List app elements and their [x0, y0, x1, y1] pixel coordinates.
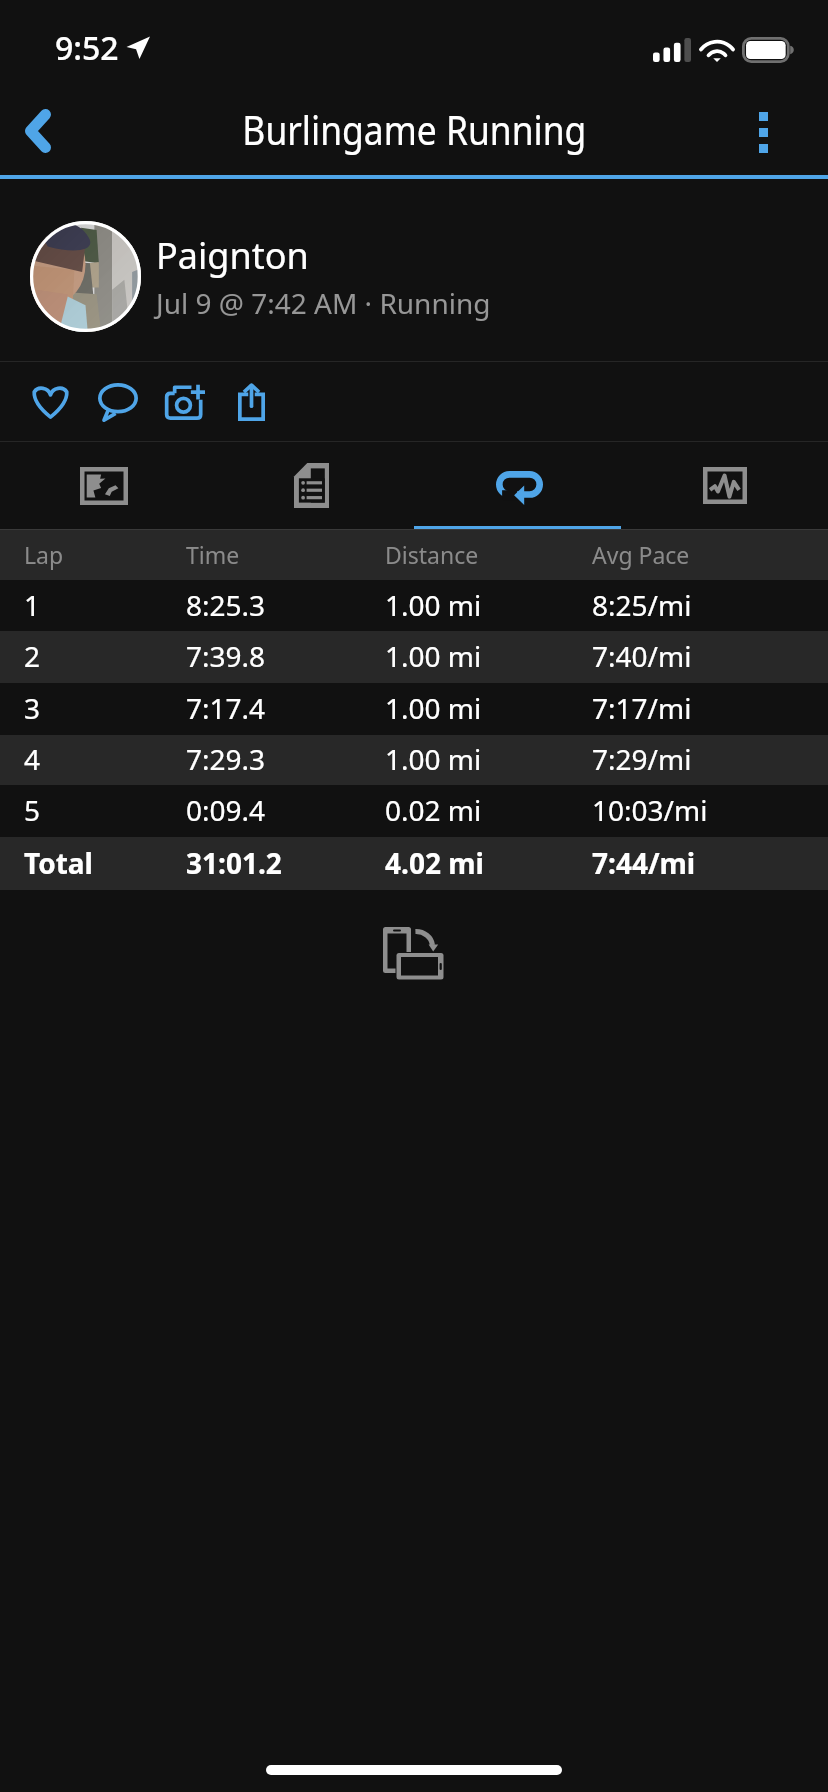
- staticText: Avg Pace: [592, 539, 690, 570]
- staticText: 7:17/mi: [592, 689, 692, 727]
- button[interactable]: 1: [0, 580, 828, 631]
- staticText: 31:01.2: [186, 844, 282, 882]
- button[interactable]: Comment: [84, 367, 151, 437]
- button[interactable]: More options: [731, 96, 795, 168]
- staticText: 0.02 mi: [385, 791, 482, 829]
- staticText: 7:40/mi: [592, 637, 692, 675]
- staticText: 8:25.3: [186, 586, 266, 624]
- button[interactable]: 3: [0, 683, 828, 735]
- staticText: 8:25/mi: [592, 586, 692, 624]
- button[interactable]: Like: [17, 367, 84, 437]
- staticText: 1.00 mi: [385, 637, 482, 675]
- button[interactable]: Paignton: [0, 179, 828, 361]
- staticText: Paignton: [156, 231, 309, 280]
- staticText: 7:29.3: [186, 740, 266, 778]
- button[interactable]: Add photo: [151, 367, 218, 437]
- staticText: Burlingame Running: [242, 102, 587, 156]
- button[interactable]: Lap: [0, 530, 828, 580]
- button[interactable]: Details: [207, 442, 414, 529]
- button[interactable]: 4: [0, 735, 828, 785]
- staticText: 1.00 mi: [385, 689, 482, 727]
- staticText: 7:39.8: [186, 637, 266, 675]
- staticText: Jul 9 @ 7:42 AM · Running: [156, 284, 491, 322]
- staticText: Time: [186, 539, 240, 570]
- button[interactable]: 2: [0, 631, 828, 683]
- button[interactable]: Graphs: [621, 442, 828, 529]
- staticText: Lap: [24, 539, 64, 570]
- staticText: 9:52: [55, 26, 119, 70]
- button[interactable]: Total: [0, 837, 828, 890]
- staticText: 7:29/mi: [592, 740, 692, 778]
- button[interactable]: Share: [218, 367, 285, 437]
- staticText: 4.02 mi: [385, 844, 484, 882]
- button[interactable]: Rotate screen: [375, 920, 453, 986]
- button[interactable]: 5: [0, 785, 828, 837]
- staticText: 3: [24, 689, 41, 727]
- staticText: 10:03/mi: [592, 791, 708, 829]
- staticText: 1.00 mi: [385, 586, 482, 624]
- staticText: Total: [24, 844, 93, 882]
- button[interactable]: Back: [6, 95, 70, 167]
- button[interactable]: Laps: [414, 442, 621, 529]
- staticText: 7:17.4: [186, 689, 266, 727]
- staticText: Distance: [385, 539, 479, 570]
- staticText: 0:09.4: [186, 791, 266, 829]
- staticText: 1: [24, 586, 41, 624]
- staticText: 7:44/mi: [592, 844, 696, 882]
- button[interactable]: Map: [0, 442, 207, 529]
- staticText: 4: [24, 740, 41, 778]
- staticText: 2: [24, 637, 41, 675]
- staticText: 5: [24, 791, 41, 829]
- staticText: 1.00 mi: [385, 740, 482, 778]
